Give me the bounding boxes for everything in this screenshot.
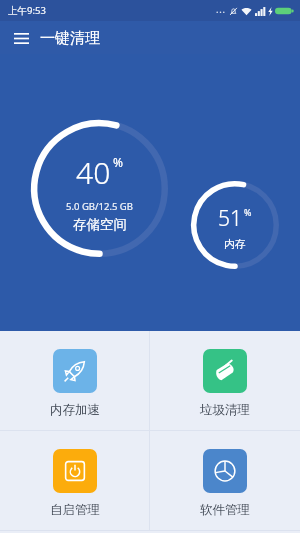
staticText: 垃圾清理 [200, 402, 250, 418]
button[interactable]: Menu [9, 26, 33, 50]
staticText: 上午9:53 [8, 4, 46, 17]
staticText: 51 [218, 204, 242, 233]
staticText: 自启管理 [50, 502, 100, 518]
staticText: 一键清理 [40, 29, 100, 48]
button[interactable]: 自启管理 [0, 431, 149, 530]
button[interactable]: 内存加速 [0, 331, 149, 430]
staticText: 存储空间 [73, 216, 127, 233]
button[interactable]: 垃圾清理 [150, 331, 300, 430]
staticText: % [244, 206, 252, 218]
staticText: 内存 [224, 237, 246, 251]
staticText: 40 [76, 152, 111, 193]
staticText: 5.0 GB/12.5 GB [66, 200, 133, 213]
button[interactable]: 软件管理 [150, 431, 300, 530]
staticText: % [113, 154, 123, 170]
staticText: 软件管理 [200, 502, 250, 518]
staticText: 内存加速 [50, 402, 100, 418]
